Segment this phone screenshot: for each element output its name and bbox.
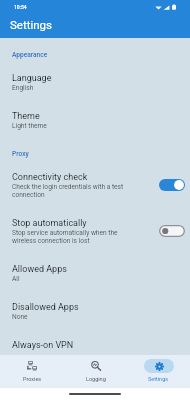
button[interactable]: Always-on VPN — [0, 338, 190, 351]
staticText: Connectivity check — [12, 170, 88, 183]
button[interactable]: Proxies — [0, 355, 64, 388]
staticText: 10:54 — [14, 4, 27, 10]
button[interactable]: Connectivity check — [0, 170, 190, 199]
staticText: Settings — [148, 375, 169, 382]
staticText: Logging — [86, 375, 106, 382]
staticText: Theme — [12, 109, 40, 122]
button[interactable]: Allowed Apps — [0, 262, 190, 283]
staticText: Stop automatically — [12, 216, 87, 229]
staticText: Allowed Apps — [12, 262, 67, 275]
staticText: Always-on VPN — [12, 338, 74, 351]
staticText: Proxy — [12, 148, 29, 158]
other: Logging — [91, 361, 101, 371]
staticText: Appearance — [12, 49, 48, 59]
button[interactable]: Disallowed Apps — [0, 300, 190, 321]
button[interactable]: Language — [0, 71, 190, 92]
staticText: Light theme — [12, 122, 47, 130]
staticText: Language — [12, 71, 52, 84]
staticText: None — [12, 313, 28, 321]
button[interactable]: Stop automatically — [0, 216, 190, 245]
staticText: Check the login credentials with a test … — [12, 183, 132, 199]
button[interactable]: Toggle off — [159, 225, 185, 237]
button[interactable]: Logging — [64, 355, 127, 388]
other: Settings — [155, 362, 164, 371]
staticText: Stop service automatically when the wire… — [12, 229, 132, 245]
button[interactable]: Theme — [0, 109, 190, 130]
staticText: English — [12, 84, 34, 92]
button[interactable]: Settings — [127, 355, 190, 388]
staticText: All — [12, 275, 20, 283]
staticText: Settings — [10, 18, 52, 31]
staticText: Proxies — [23, 375, 42, 382]
button[interactable]: Toggle on — [159, 179, 185, 191]
staticText: Disallowed Apps — [12, 300, 79, 313]
other: Proxies — [27, 361, 37, 371]
